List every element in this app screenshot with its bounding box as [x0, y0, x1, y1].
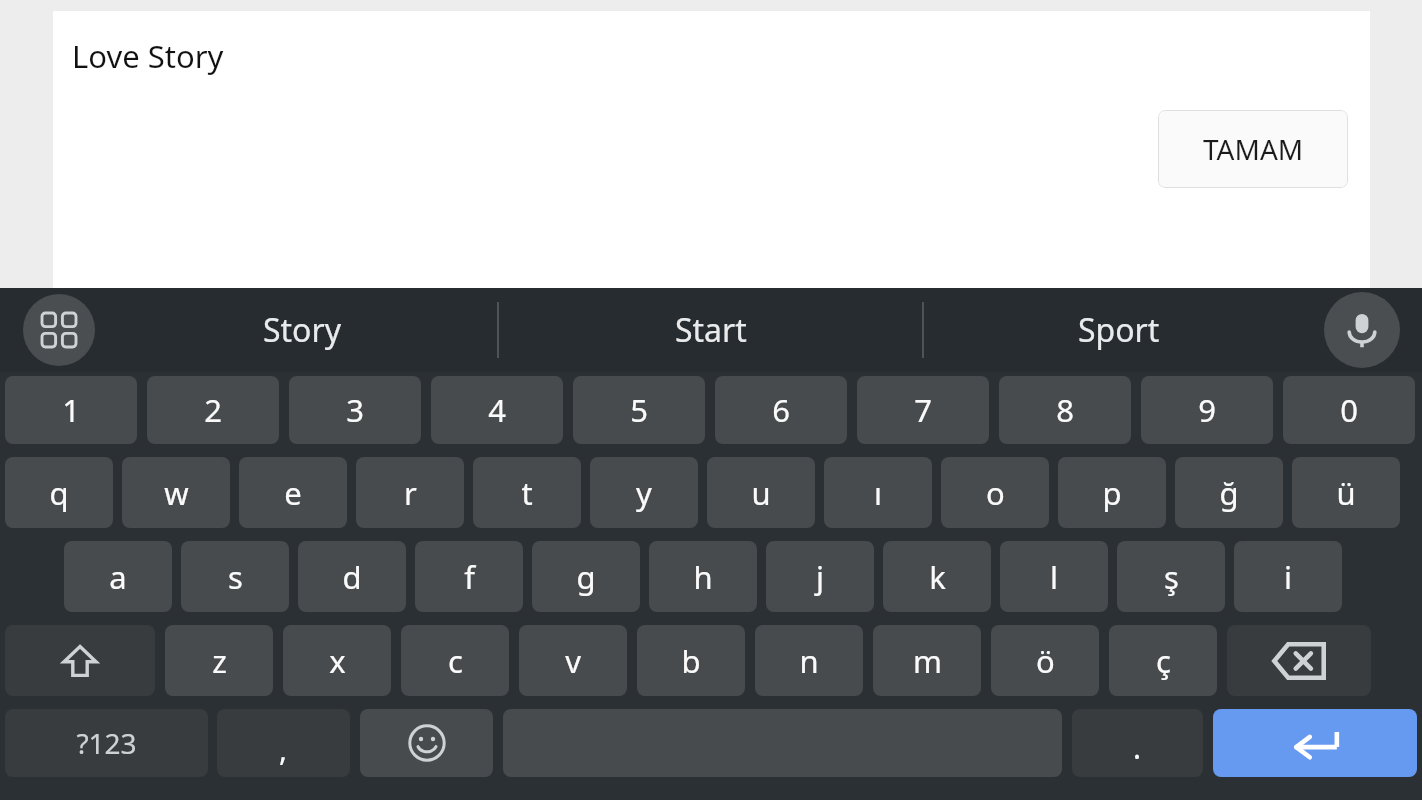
- staticText: ğ: [1219, 472, 1239, 514]
- button[interactable]: h: [649, 541, 757, 612]
- staticText: u: [751, 472, 771, 514]
- staticText: ı: [874, 472, 882, 514]
- staticText: Sport: [1078, 308, 1160, 352]
- staticText: c: [448, 640, 463, 682]
- button[interactable]: n: [755, 625, 863, 696]
- button[interactable]: i: [1234, 541, 1342, 612]
- button[interactable]: ,: [217, 709, 350, 777]
- staticText: n: [799, 640, 819, 682]
- button[interactable]: o: [941, 457, 1049, 528]
- staticText: m: [913, 640, 942, 682]
- staticText: 3: [346, 389, 364, 431]
- staticText: 7: [914, 389, 932, 431]
- staticText: 4: [488, 389, 506, 431]
- button[interactable]: d: [298, 541, 406, 612]
- button[interactable]: Story: [108, 288, 497, 372]
- button[interactable]: 2: [147, 376, 279, 444]
- staticText: z: [212, 640, 227, 682]
- staticText: 9: [1198, 389, 1216, 431]
- button[interactable]: 6: [715, 376, 847, 444]
- staticText: Story: [263, 308, 342, 352]
- button[interactable]: ç: [1109, 625, 1217, 696]
- button[interactable]: z: [165, 625, 273, 696]
- button[interactable]: e: [239, 457, 347, 528]
- button[interactable]: ş: [1117, 541, 1225, 612]
- staticText: g: [576, 556, 596, 598]
- button[interactable]: 4: [431, 376, 563, 444]
- button[interactable]: Sport: [924, 288, 1313, 372]
- staticText: h: [693, 556, 713, 598]
- button[interactable]: Enter: [1213, 709, 1417, 777]
- staticText: ,: [279, 729, 288, 770]
- staticText: 8: [1056, 389, 1074, 431]
- button[interactable]: k: [883, 541, 991, 612]
- button[interactable]: 8: [999, 376, 1131, 444]
- button[interactable]: Start: [499, 288, 922, 372]
- button[interactable]: a: [64, 541, 172, 612]
- button[interactable]: ?123: [5, 709, 208, 777]
- button[interactable]: b: [637, 625, 745, 696]
- staticText: v: [565, 640, 581, 682]
- button[interactable]: ü: [1292, 457, 1400, 528]
- button[interactable]: y: [590, 457, 698, 528]
- staticText: o: [986, 472, 1005, 514]
- staticText: a: [109, 556, 127, 598]
- button[interactable]: ö: [991, 625, 1099, 696]
- button[interactable]: p: [1058, 457, 1166, 528]
- staticText: t: [521, 472, 533, 514]
- button[interactable]: v: [519, 625, 627, 696]
- button[interactable]: 7: [857, 376, 989, 444]
- staticText: j: [816, 556, 824, 598]
- button[interactable]: .: [1072, 709, 1203, 777]
- button[interactable]: m: [873, 625, 981, 696]
- button[interactable]: Shift: [5, 625, 155, 696]
- button[interactable]: 9: [1141, 376, 1273, 444]
- button[interactable]: t: [473, 457, 581, 528]
- staticText: 6: [772, 389, 790, 431]
- button[interactable]: f: [415, 541, 523, 612]
- staticText: b: [681, 640, 701, 682]
- button[interactable]: 0: [1283, 376, 1415, 444]
- button[interactable]: 3: [289, 376, 421, 444]
- staticText: y: [636, 472, 652, 514]
- button[interactable]: w: [122, 457, 230, 528]
- staticText: e: [284, 472, 302, 514]
- staticText: ş: [1164, 556, 1179, 598]
- staticText: w: [164, 472, 189, 514]
- button[interactable]: x: [283, 625, 391, 696]
- button[interactable]: TAMAM: [1158, 110, 1348, 188]
- staticText: 5: [630, 389, 648, 431]
- button[interactable]: Emoji: [360, 709, 493, 777]
- button[interactable]: Backspace: [1227, 625, 1371, 696]
- staticText: p: [1102, 472, 1122, 514]
- button[interactable]: ğ: [1175, 457, 1283, 528]
- button[interactable]: c: [401, 625, 509, 696]
- staticText: ü: [1336, 472, 1356, 514]
- staticText: i: [1284, 556, 1292, 598]
- staticText: r: [404, 472, 417, 514]
- button[interactable]: g: [532, 541, 640, 612]
- staticText: Start: [675, 308, 747, 352]
- button[interactable]: j: [766, 541, 874, 612]
- staticText: 2: [204, 389, 222, 431]
- button[interactable]: l: [1000, 541, 1108, 612]
- button[interactable]: s: [181, 541, 289, 612]
- staticText: f: [464, 556, 475, 598]
- staticText: Love Story: [72, 35, 224, 77]
- button[interactable]: u: [707, 457, 815, 528]
- staticText: 0: [1340, 389, 1358, 431]
- staticText: .: [1133, 727, 1142, 768]
- button[interactable]: Voice input: [1324, 292, 1400, 368]
- staticText: x: [329, 640, 346, 682]
- staticText: l: [1050, 556, 1058, 598]
- button[interactable]: Keyboard modes: [23, 294, 95, 366]
- button[interactable]: 1: [5, 376, 137, 444]
- staticText: d: [342, 556, 362, 598]
- button[interactable]: 5: [573, 376, 705, 444]
- button[interactable]: q: [5, 457, 113, 528]
- staticText: ?123: [76, 724, 137, 762]
- button[interactable]: ı: [824, 457, 932, 528]
- staticText: s: [228, 556, 243, 598]
- button[interactable]: r: [356, 457, 464, 528]
